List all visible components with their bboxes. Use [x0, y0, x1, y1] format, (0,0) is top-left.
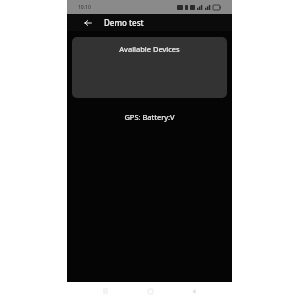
button[interactable]: Back	[187, 284, 201, 298]
button[interactable]: Home	[143, 284, 157, 298]
button[interactable]: Available Devices	[72, 37, 227, 98]
staticText: Available Devices	[119, 44, 180, 54]
staticText: GPS: Battery:V	[67, 112, 232, 122]
button[interactable]: Back	[81, 16, 94, 29]
staticText: 10:10	[78, 4, 91, 11]
button[interactable]: Recents	[98, 284, 112, 298]
staticText: Demo test	[104, 17, 144, 28]
